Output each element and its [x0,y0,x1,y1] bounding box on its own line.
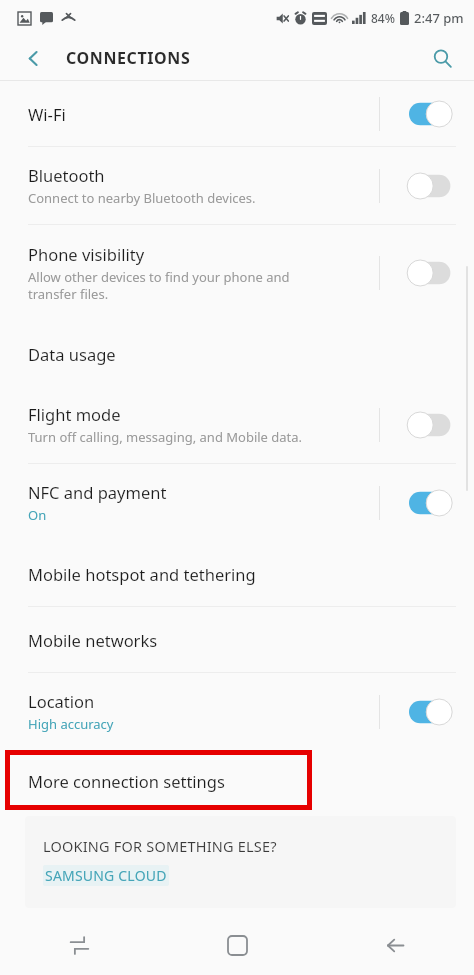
button[interactable]: Mobile networks [0,607,474,672]
staticText: 2:47 pm [414,9,464,27]
staticText: SAMSUNG CLOUD [45,866,167,885]
button[interactable]: Phone visibility [0,225,474,321]
staticText: Location [28,690,95,712]
button[interactable]: Toggle off [409,173,456,199]
button[interactable]: Wi-Fi [0,81,474,146]
button[interactable]: Bluetooth [0,147,474,224]
button[interactable]: Toggle off [409,260,456,286]
staticText: Mobile networks [28,629,158,651]
staticText: Connect to nearby Bluetooth devices. [28,189,256,207]
staticText: Flight mode [28,403,121,425]
staticText: Turn off calling, messaging, and Mobile … [28,428,303,446]
staticText: On [28,506,47,524]
button[interactable]: Recents [0,915,158,975]
staticText: 84% [371,10,395,26]
button[interactable]: NFC and payment [0,464,474,541]
staticText: Phone visibility [28,243,145,265]
staticText: Wi-Fi [28,103,66,125]
staticText: CONNECTIONS [66,47,191,69]
button[interactable]: Data usage [0,321,474,386]
staticText: LOOKING FOR SOMETHING ELSE? [43,836,277,856]
button[interactable]: Home [158,915,316,975]
staticText: High accuracy [28,715,114,733]
button[interactable]: Toggle off [409,412,456,438]
button[interactable]: LOOKING FOR SOMETHING ELSE? [25,816,456,908]
staticText: NFC and payment [28,481,167,503]
button[interactable]: Back [316,915,474,975]
staticText: More connection settings [28,770,225,792]
button[interactable]: Toggle on [409,101,456,127]
staticText: Bluetooth [28,164,105,186]
button[interactable]: Search [424,40,460,76]
staticText: Data usage [28,343,116,365]
staticText: Allow other devices to find your phone a… [28,268,290,303]
button[interactable]: Flight mode [0,386,474,463]
button[interactable]: Toggle on [409,699,456,725]
button[interactable]: Mobile hotspot and tethering [0,541,474,606]
button[interactable]: Toggle on [409,490,456,516]
button[interactable]: Back [16,41,50,75]
button[interactable]: More connection settings [0,750,474,812]
button[interactable]: Location [0,673,474,750]
staticText: Mobile hotspot and tethering [28,563,256,585]
